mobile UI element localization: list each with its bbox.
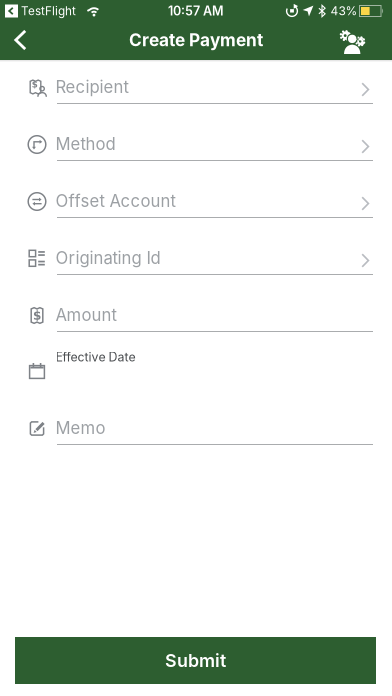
staticText: 10:57 AM — [168, 3, 224, 19]
button[interactable]: Originating Id — [0, 230, 392, 287]
button[interactable]: Offset Account — [0, 173, 392, 230]
staticText: Offset Account — [55, 191, 175, 211]
button[interactable]: Effective Date — [0, 344, 392, 401]
staticText: $ — [32, 79, 38, 90]
button[interactable]: Manage recipients — [328, 22, 376, 60]
staticText: Effective Date — [55, 349, 135, 364]
staticText: 43% — [330, 4, 357, 18]
staticText: Memo — [55, 418, 105, 438]
button[interactable]: Back — [0, 21, 40, 59]
staticText: Originating Id — [55, 248, 160, 268]
staticText: Submit — [165, 650, 226, 671]
button[interactable]: Submit — [15, 637, 376, 684]
staticText: $ — [33, 308, 41, 322]
staticText: TestFlight — [21, 4, 76, 18]
staticText: Recipient — [55, 77, 128, 97]
staticText: Create Payment — [129, 30, 263, 50]
button[interactable]: $ — [0, 287, 392, 344]
button[interactable]: Method — [0, 116, 392, 173]
staticText: Amount — [55, 305, 116, 325]
button[interactable]: $ — [0, 59, 392, 116]
button[interactable]: Memo — [0, 400, 392, 457]
staticText: Method — [55, 134, 115, 154]
